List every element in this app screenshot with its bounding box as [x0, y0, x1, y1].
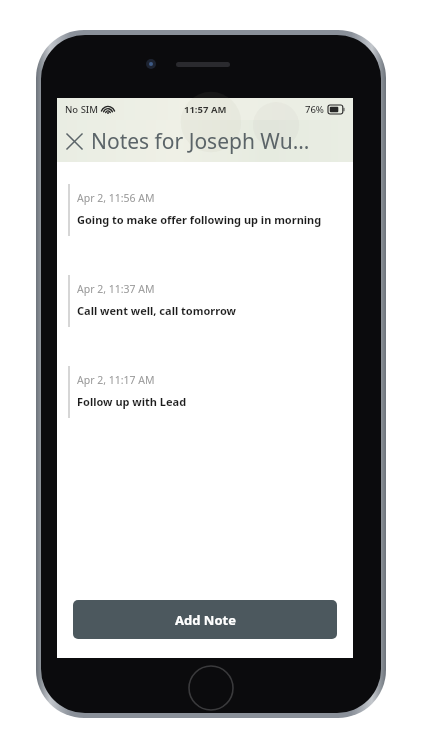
- button[interactable]: Add Note: [73, 600, 337, 639]
- staticText: 76%: [305, 103, 324, 116]
- staticText: Apr 2, 11:37 AM: [77, 282, 155, 296]
- button[interactable]: Apr 2, 11:37 AM: [57, 275, 353, 327]
- staticText: Apr 2, 11:17 AM: [77, 373, 155, 387]
- staticText: Add Note: [175, 611, 236, 629]
- button[interactable]: Apr 2, 11:17 AM: [57, 366, 353, 418]
- staticText: Apr 2, 11:56 AM: [77, 191, 155, 205]
- staticText: Going to make offer following up in morn…: [77, 212, 322, 227]
- staticText: No SIM: [65, 103, 98, 116]
- staticText: 11:57 AM: [184, 103, 227, 116]
- button[interactable]: Close: [57, 120, 91, 162]
- staticText: Call went well, call tomorrow: [77, 303, 236, 318]
- staticText: Follow up with Lead: [77, 394, 187, 409]
- staticText: Notes for Joseph Wu…: [91, 127, 310, 156]
- button[interactable]: Apr 2, 11:56 AM: [57, 184, 353, 236]
